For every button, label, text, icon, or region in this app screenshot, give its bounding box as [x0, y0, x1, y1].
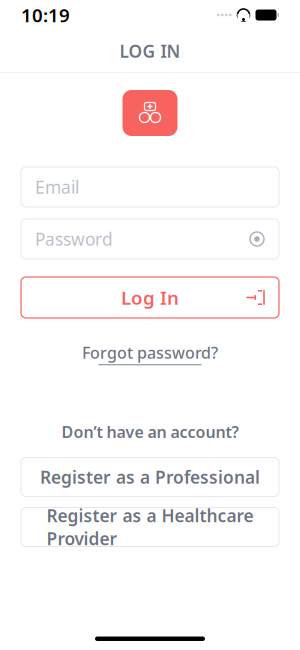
- staticText: Email: [35, 175, 79, 198]
- button[interactable]: Forgot password?: [72, 336, 228, 371]
- button[interactable]: LOG IN: [0, 30, 300, 72]
- staticText: LOG IN: [119, 39, 180, 62]
- staticText: Log In: [121, 285, 179, 310]
- button[interactable]: Log In: [21, 277, 279, 318]
- staticText: Register as a Professional: [40, 465, 260, 488]
- staticText: Don’t have an account?: [61, 421, 238, 442]
- staticText: Register as a Healthcare Provider: [46, 504, 253, 550]
- button[interactable]: Register as a Professional: [21, 457, 279, 496]
- staticText: 10:19: [21, 3, 70, 27]
- button[interactable]: Register as a Healthcare Provider: [21, 507, 279, 546]
- staticText: Password: [35, 227, 113, 250]
- staticText: Forgot password?: [82, 342, 218, 363]
